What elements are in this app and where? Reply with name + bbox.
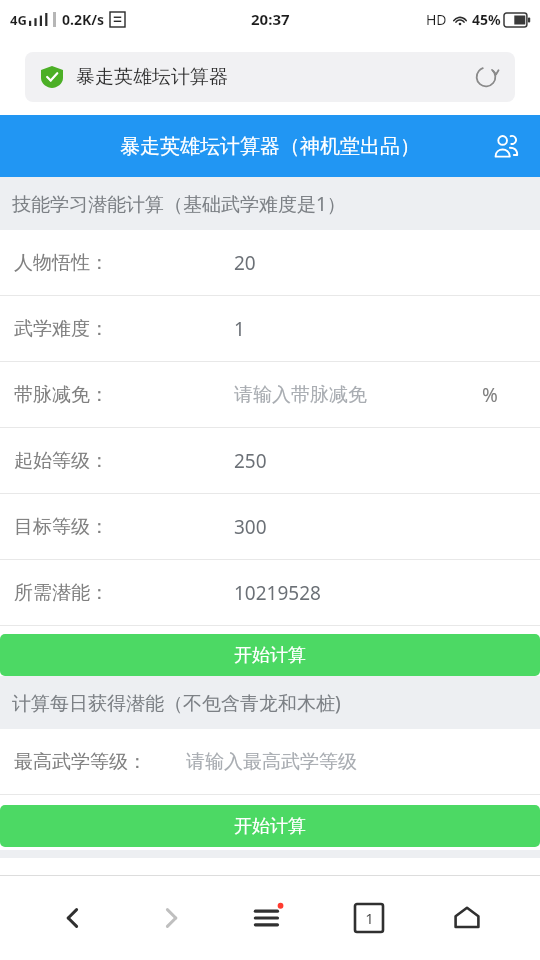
button[interactable]: Tabs [343,892,395,944]
staticText: 计算每日获得潜能（不包含青龙和木桩) [12,690,341,716]
staticText: 暴走英雄坛计算器 [76,65,228,89]
staticText: 人物悟性： [14,251,109,275]
button[interactable]: 所需潜能： [0,560,540,626]
staticText: 20:37 [251,9,290,29]
staticText: 1 [365,908,374,928]
staticText: 开始计算 [234,815,306,838]
staticText: 10219528 [234,580,321,606]
staticText: 45% [472,10,501,29]
staticText: 请输入带脉减免 [234,383,367,407]
staticText: 0.2K/s [62,10,105,29]
staticText: 300 [234,514,267,540]
staticText: 1 [234,316,245,342]
button[interactable]: 带脉减免： [0,362,540,428]
button[interactable]: Forward [145,892,197,944]
staticText: 武学难度： [14,317,109,341]
button[interactable]: 起始等级： [0,428,540,494]
button[interactable]: 武学难度： [0,296,540,362]
button[interactable]: Menu [244,892,296,944]
staticText: 技能学习潜能计算（基础武学难度是1） [12,191,346,217]
button[interactable]: 目标等级： [0,494,540,560]
button[interactable]: 最高武学等级： [0,729,540,795]
staticText: HD [426,10,447,29]
button[interactable]: Contacts [486,126,526,166]
staticText: 请输入最高武学等级 [186,750,357,774]
button[interactable]: 人物悟性： [0,230,540,296]
staticText: 带脉减免： [14,383,109,407]
staticText: 所需潜能： [14,581,109,605]
button[interactable]: Refresh [473,64,499,90]
button[interactable]: 暴走英雄坛计算器 [25,52,515,102]
button[interactable]: Home [441,892,493,944]
button[interactable]: 开始计算 [0,805,540,847]
staticText: 250 [234,448,267,474]
staticText: 最高武学等级： [14,750,147,774]
staticText: 暴走英雄坛计算器（神机堂出品） [120,134,420,159]
staticText: 起始等级： [14,449,109,473]
staticText: 开始计算 [234,644,306,667]
button[interactable]: Back [47,892,99,944]
staticText: % [482,382,498,408]
staticText: 20 [234,250,256,276]
staticText: 4G [10,11,27,29]
staticText: 目标等级： [14,515,109,539]
button[interactable]: 开始计算 [0,634,540,676]
